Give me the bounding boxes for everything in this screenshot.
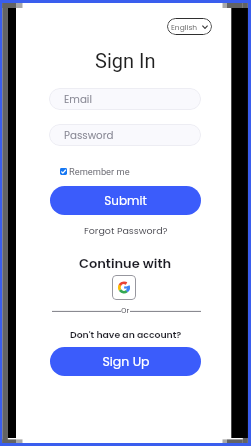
staticText: Submit: [104, 192, 147, 209]
staticText: Or: [121, 306, 130, 315]
staticText: Continue with: [79, 254, 172, 272]
button[interactable]: Email: [49, 88, 201, 110]
staticText: English: [171, 22, 198, 32]
button[interactable]: Sign Up: [50, 347, 201, 376]
staticText: Sign Up: [102, 353, 150, 370]
button[interactable]: Continue with Google: [112, 275, 136, 300]
button[interactable]: Forgot Password?: [84, 224, 168, 237]
staticText: Password: [64, 128, 114, 142]
button[interactable]: Password: [49, 124, 201, 146]
staticText: Sign In: [95, 49, 156, 72]
button[interactable]: Remember me: [60, 165, 130, 177]
staticText: Remember me: [69, 166, 130, 177]
staticText: Don't have an account?: [70, 328, 182, 341]
staticText: Email: [64, 92, 92, 106]
button[interactable]: Submit: [50, 186, 201, 215]
button[interactable]: English: [167, 18, 212, 35]
